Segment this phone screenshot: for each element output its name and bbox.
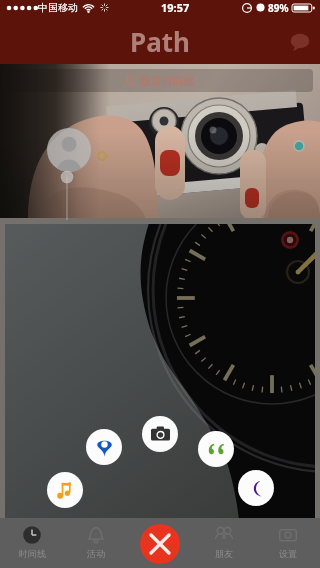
button[interactable]: 搜索时间线 — [7, 69, 313, 92]
staticText: 活动 — [87, 548, 105, 559]
staticText: 朋友 — [215, 548, 233, 559]
staticText: 中国移动 — [38, 1, 78, 14]
button[interactable]: Add thought — [198, 431, 234, 467]
button[interactable]: 朋友 — [192, 518, 256, 559]
staticText: 89% — [268, 1, 289, 15]
button[interactable]: Close — [140, 524, 180, 564]
button[interactable]: Profile — [47, 128, 91, 172]
button[interactable]: 设置 — [256, 518, 320, 559]
staticText: 时间线 — [19, 548, 46, 559]
button[interactable]: Add place — [86, 429, 122, 465]
staticText: 设置 — [279, 548, 297, 559]
button[interactable]: 时间线 — [0, 518, 64, 559]
staticText: Path — [130, 24, 190, 59]
button[interactable]: Sleep — [238, 470, 274, 506]
button[interactable]: Add music — [47, 472, 83, 508]
staticText: 19:57 — [161, 0, 190, 15]
button[interactable]: Messages — [287, 29, 313, 55]
button[interactable]: 活动 — [64, 518, 128, 559]
staticText: 搜索时间线 — [140, 74, 195, 88]
button[interactable]: Add photo — [142, 416, 178, 452]
